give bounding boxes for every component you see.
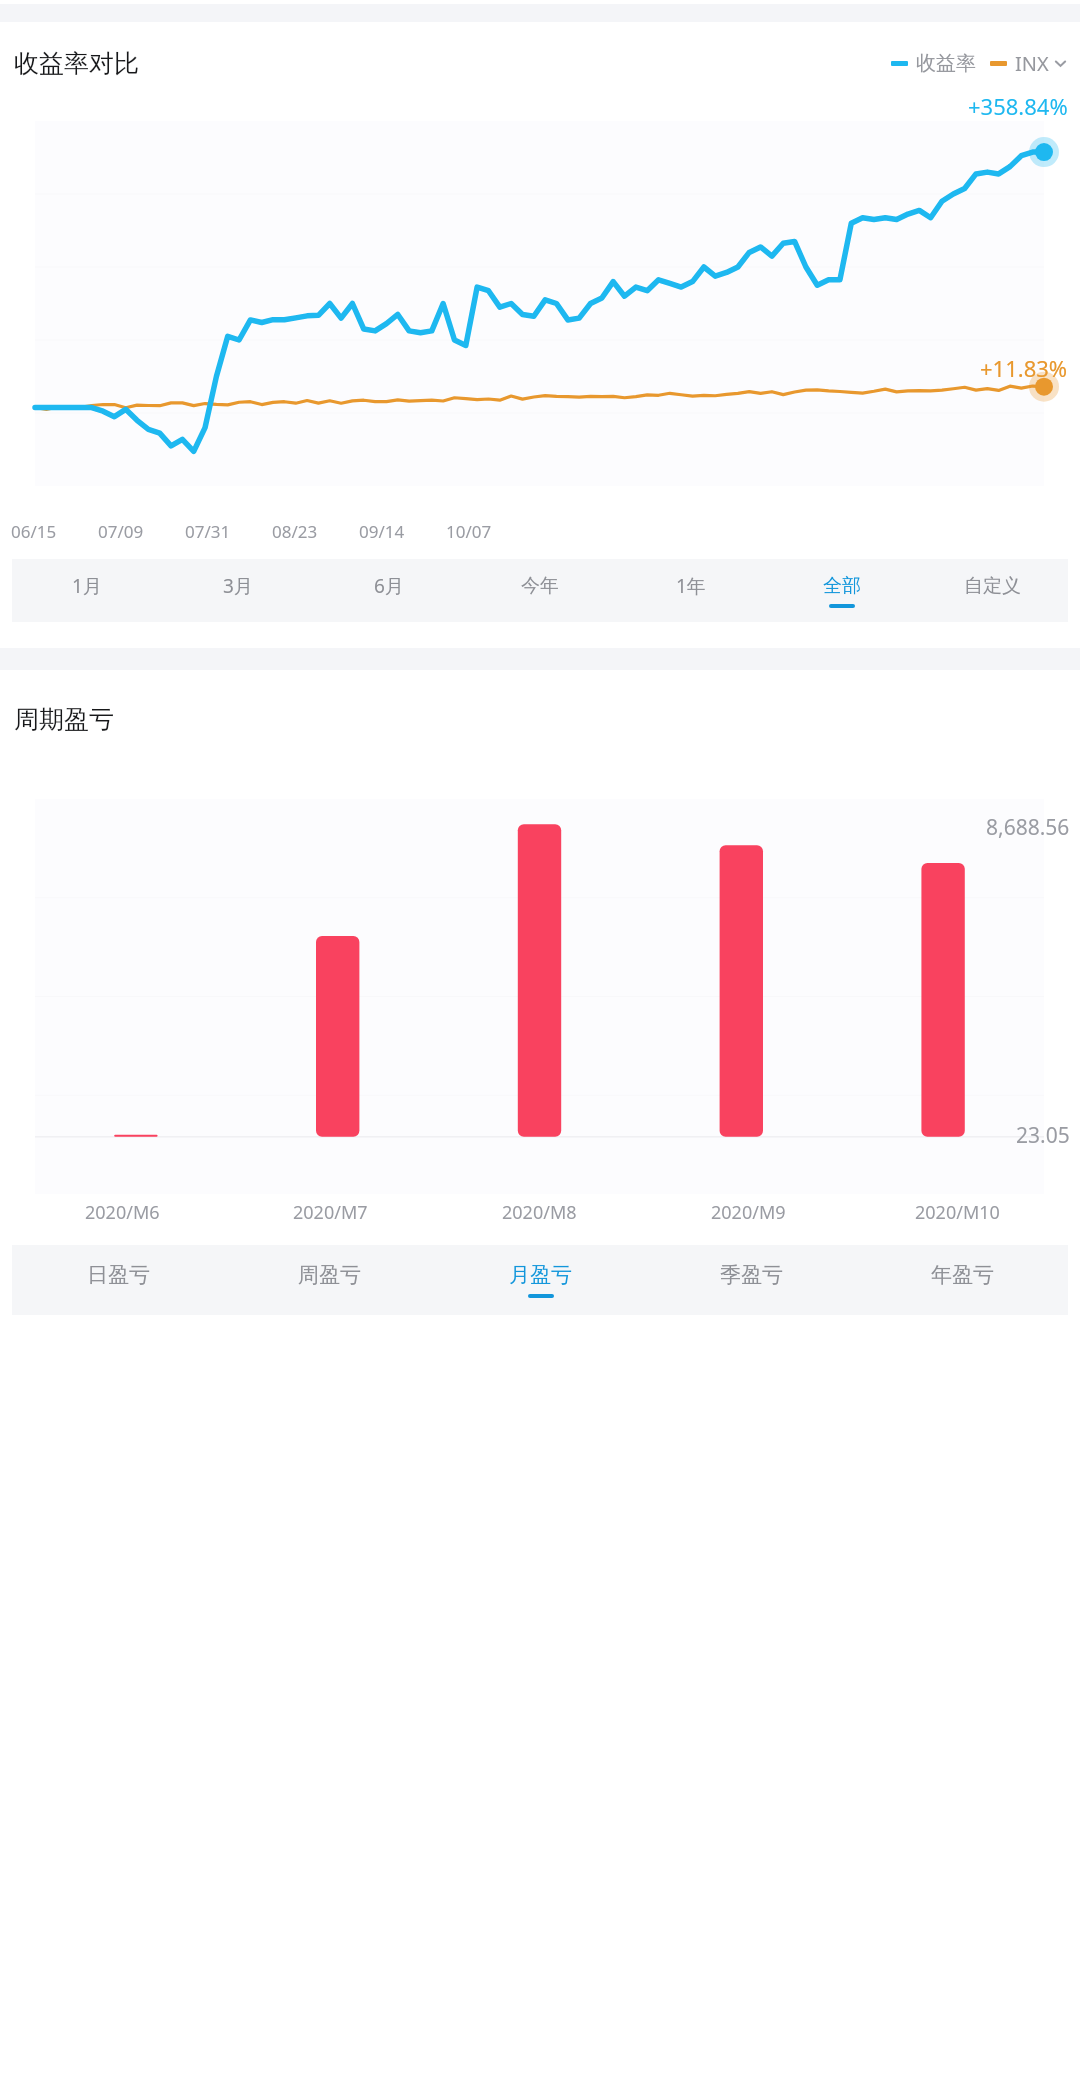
staticText: 2020/M10 bbox=[915, 1200, 1000, 1225]
staticText: +11.83% bbox=[980, 353, 1068, 383]
staticText: 周期盈亏 bbox=[14, 704, 114, 735]
staticText: 全部 bbox=[823, 574, 861, 598]
staticText: 3月 bbox=[223, 573, 253, 599]
button[interactable]: 季盈亏 bbox=[646, 1245, 857, 1315]
button[interactable]: 日盈亏 bbox=[12, 1245, 224, 1315]
staticText: 收益率对比 bbox=[14, 48, 139, 79]
staticText: 2020/M9 bbox=[711, 1200, 786, 1225]
button[interactable]: 3月 bbox=[162, 559, 313, 622]
staticText: 日盈亏 bbox=[87, 1262, 150, 1288]
button[interactable]: 1月 bbox=[12, 559, 162, 622]
staticText: 自定义 bbox=[964, 574, 1021, 598]
staticText: 季盈亏 bbox=[720, 1262, 783, 1288]
button[interactable]: 1年 bbox=[615, 559, 766, 622]
button[interactable]: 周盈亏 bbox=[224, 1245, 435, 1315]
staticText: 06/15 bbox=[11, 520, 57, 543]
staticText: 08/23 bbox=[272, 520, 318, 543]
other: Change benchmark bbox=[1055, 58, 1066, 69]
staticText: 收益率 bbox=[916, 51, 976, 76]
staticText: 2020/M6 bbox=[85, 1200, 160, 1225]
button[interactable]: 今年 bbox=[464, 559, 615, 622]
button[interactable]: 月盈亏 bbox=[435, 1245, 646, 1315]
staticText: 2020/M8 bbox=[502, 1200, 577, 1225]
button[interactable]: 收益率 bbox=[891, 51, 976, 76]
staticText: +358.84% bbox=[968, 91, 1068, 121]
staticText: 1月 bbox=[72, 573, 102, 599]
staticText: 1年 bbox=[676, 573, 706, 599]
staticText: 10/07 bbox=[446, 520, 492, 543]
staticText: 年盈亏 bbox=[931, 1262, 994, 1288]
staticText: 周盈亏 bbox=[298, 1262, 361, 1288]
staticText: 09/14 bbox=[359, 520, 405, 543]
button[interactable]: INX bbox=[990, 50, 1066, 77]
staticText: 今年 bbox=[521, 574, 559, 598]
staticText: INX bbox=[1015, 50, 1049, 77]
staticText: 07/09 bbox=[98, 520, 144, 543]
staticText: 月盈亏 bbox=[509, 1262, 572, 1288]
button[interactable]: 全部 bbox=[766, 559, 917, 622]
staticText: 6月 bbox=[374, 573, 404, 599]
button[interactable]: 6月 bbox=[313, 559, 464, 622]
button[interactable]: INX bbox=[990, 50, 1049, 77]
staticText: 07/31 bbox=[185, 520, 231, 543]
staticText: 2020/M7 bbox=[293, 1200, 368, 1225]
staticText: 23.05 bbox=[1016, 1121, 1070, 1150]
staticText: 8,688.56 bbox=[986, 813, 1070, 842]
button[interactable]: 自定义 bbox=[917, 559, 1068, 622]
button[interactable]: 年盈亏 bbox=[857, 1245, 1068, 1315]
